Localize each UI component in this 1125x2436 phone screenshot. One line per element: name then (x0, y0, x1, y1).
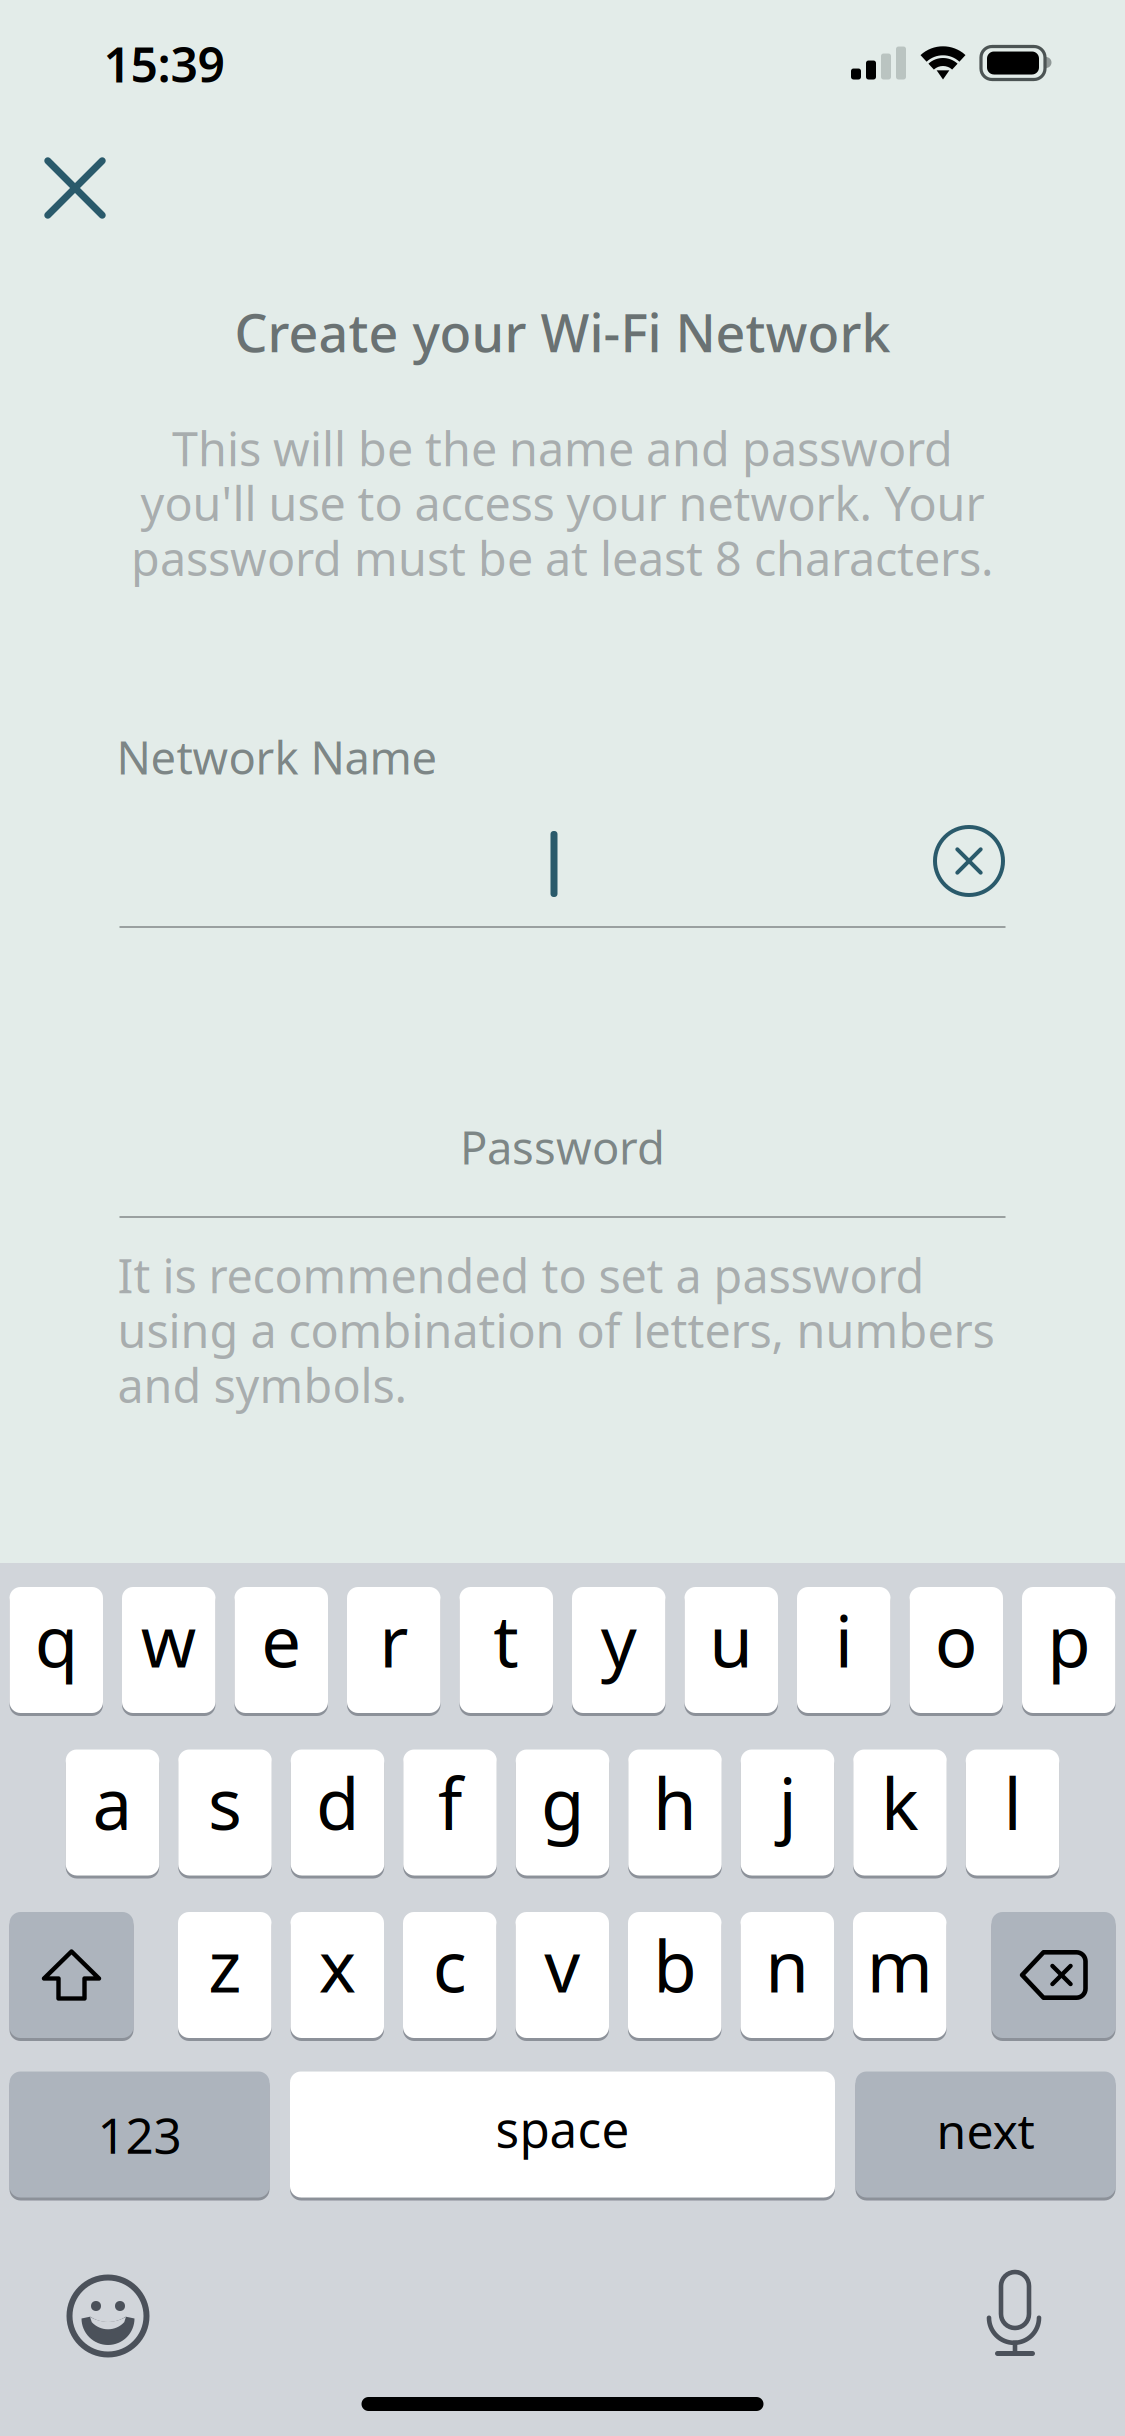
button[interactable]: f (403, 1746, 497, 1878)
staticText: z (208, 1918, 241, 2012)
button[interactable]: e (234, 1584, 328, 1716)
staticText: q (35, 1593, 78, 1687)
staticText: Password (460, 1117, 665, 1177)
button[interactable]: p (1022, 1584, 1115, 1716)
button[interactable]: next (855, 2068, 1115, 2200)
staticText: Network Name (116, 727, 437, 787)
staticText: Create your Wi-Fi Network (234, 297, 890, 367)
staticText: It is recommended to set a password (117, 1244, 924, 1306)
staticText: h (653, 1756, 697, 1849)
staticText: d (316, 1756, 359, 1849)
button[interactable]: Dictation (959, 2257, 1071, 2369)
button[interactable]: c (403, 1909, 496, 2041)
staticText: x (319, 1918, 356, 2012)
button[interactable]: x (290, 1909, 384, 2041)
button[interactable]: a (66, 1746, 159, 1878)
button[interactable]: Close (19, 132, 131, 244)
button[interactable]: s (178, 1746, 272, 1878)
button[interactable]: d (291, 1746, 384, 1878)
staticText: next (936, 2099, 1034, 2162)
staticText: m (867, 1918, 933, 2012)
button[interactable]: k (853, 1746, 947, 1878)
button[interactable]: l (966, 1746, 1059, 1878)
button[interactable]: Emoji keyboard (52, 2260, 164, 2372)
staticText: j (778, 1756, 796, 1849)
staticText: c (433, 1918, 467, 2012)
staticText: This will be the name and password (172, 417, 953, 479)
button[interactable] (991, 1909, 1115, 2041)
button[interactable]: w (122, 1584, 215, 1716)
staticText: l (1003, 1756, 1021, 1849)
staticText: password must be at least 8 characters. (131, 527, 994, 589)
button[interactable] (9, 1909, 133, 2041)
staticText: v (544, 1918, 580, 2012)
staticText: o (935, 1593, 978, 1687)
button[interactable]: o (909, 1584, 1003, 1716)
button[interactable]: i (797, 1584, 890, 1716)
button[interactable]: v (515, 1909, 609, 2041)
button[interactable]: z (178, 1909, 271, 2041)
staticText: p (1047, 1593, 1090, 1687)
staticText: u (709, 1593, 753, 1687)
staticText: e (261, 1593, 301, 1687)
staticText: b (653, 1918, 696, 2012)
staticText: f (438, 1756, 462, 1849)
button[interactable]: q (9, 1584, 103, 1716)
button[interactable]: 123 (9, 2068, 269, 2200)
staticText: using a combination of letters, numbers (117, 1299, 994, 1361)
button[interactable]: j (741, 1746, 834, 1878)
staticText: y (601, 1593, 637, 1687)
button[interactable]: r (347, 1584, 440, 1716)
button[interactable]: h (628, 1746, 722, 1878)
staticText: n (765, 1918, 809, 2012)
button[interactable]: t (459, 1584, 553, 1716)
staticText: g (541, 1756, 584, 1849)
staticText: k (881, 1756, 919, 1849)
staticText: a (92, 1756, 132, 1849)
button[interactable]: b (628, 1909, 721, 2041)
staticText: you'll use to access your network. Your (140, 472, 984, 534)
staticText: r (379, 1593, 408, 1687)
staticText: w (141, 1593, 197, 1687)
staticText: i (835, 1593, 853, 1687)
button[interactable]: y (572, 1584, 665, 1716)
staticText: t (493, 1593, 519, 1687)
button[interactable]: space (290, 2068, 835, 2200)
button[interactable]: g (516, 1746, 609, 1878)
button[interactable]: m (853, 1909, 946, 2041)
staticText: 123 (97, 2102, 181, 2167)
button[interactable]: Clear text (919, 811, 1019, 911)
staticText: s (208, 1756, 242, 1849)
button[interactable]: u (684, 1584, 778, 1716)
staticText: 15:39 (103, 32, 224, 96)
button[interactable]: n (740, 1909, 834, 2041)
staticText: and symbols. (117, 1354, 407, 1416)
staticText: space (495, 2096, 629, 2161)
